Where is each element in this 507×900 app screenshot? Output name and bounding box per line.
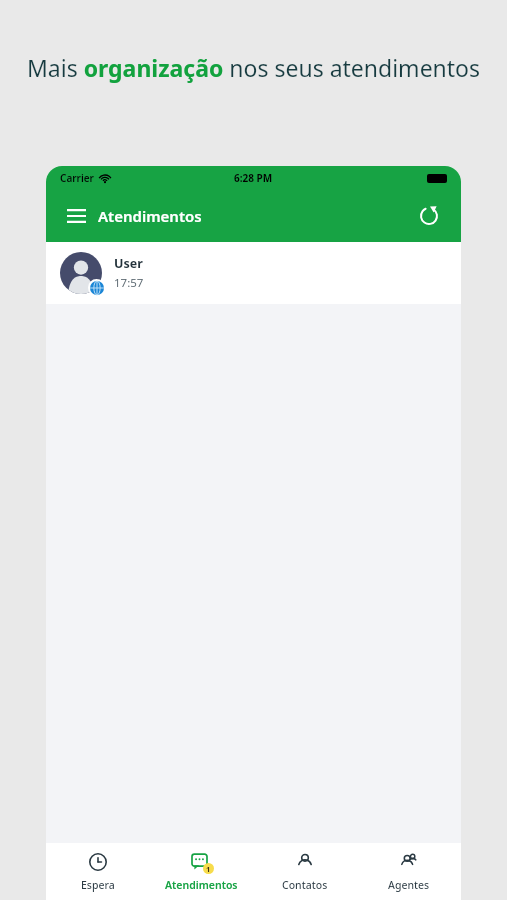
staticText: 1 — [206, 864, 211, 874]
button[interactable]: Contatos — [253, 843, 357, 900]
staticText: User — [114, 255, 143, 272]
staticText: Carrier — [60, 171, 94, 185]
button[interactable]: Menu — [56, 196, 96, 236]
staticText: Mais organização nos seus atendimentos — [22, 52, 485, 83]
staticText: 6:28 PM — [234, 171, 273, 185]
button[interactable]: User — [46, 242, 461, 304]
button[interactable]: Agentes — [357, 843, 461, 900]
staticText: Contatos — [282, 878, 328, 892]
staticText: Agentes — [388, 878, 430, 892]
button[interactable]: Espera — [46, 843, 149, 900]
button[interactable]: 1 — [149, 843, 253, 900]
staticText: Atendimentos — [98, 206, 202, 226]
staticText: Atendimentos — [165, 878, 238, 892]
staticText: 17:57 — [114, 275, 144, 291]
staticText: Espera — [81, 878, 115, 892]
button[interactable]: Refresh — [409, 196, 449, 236]
